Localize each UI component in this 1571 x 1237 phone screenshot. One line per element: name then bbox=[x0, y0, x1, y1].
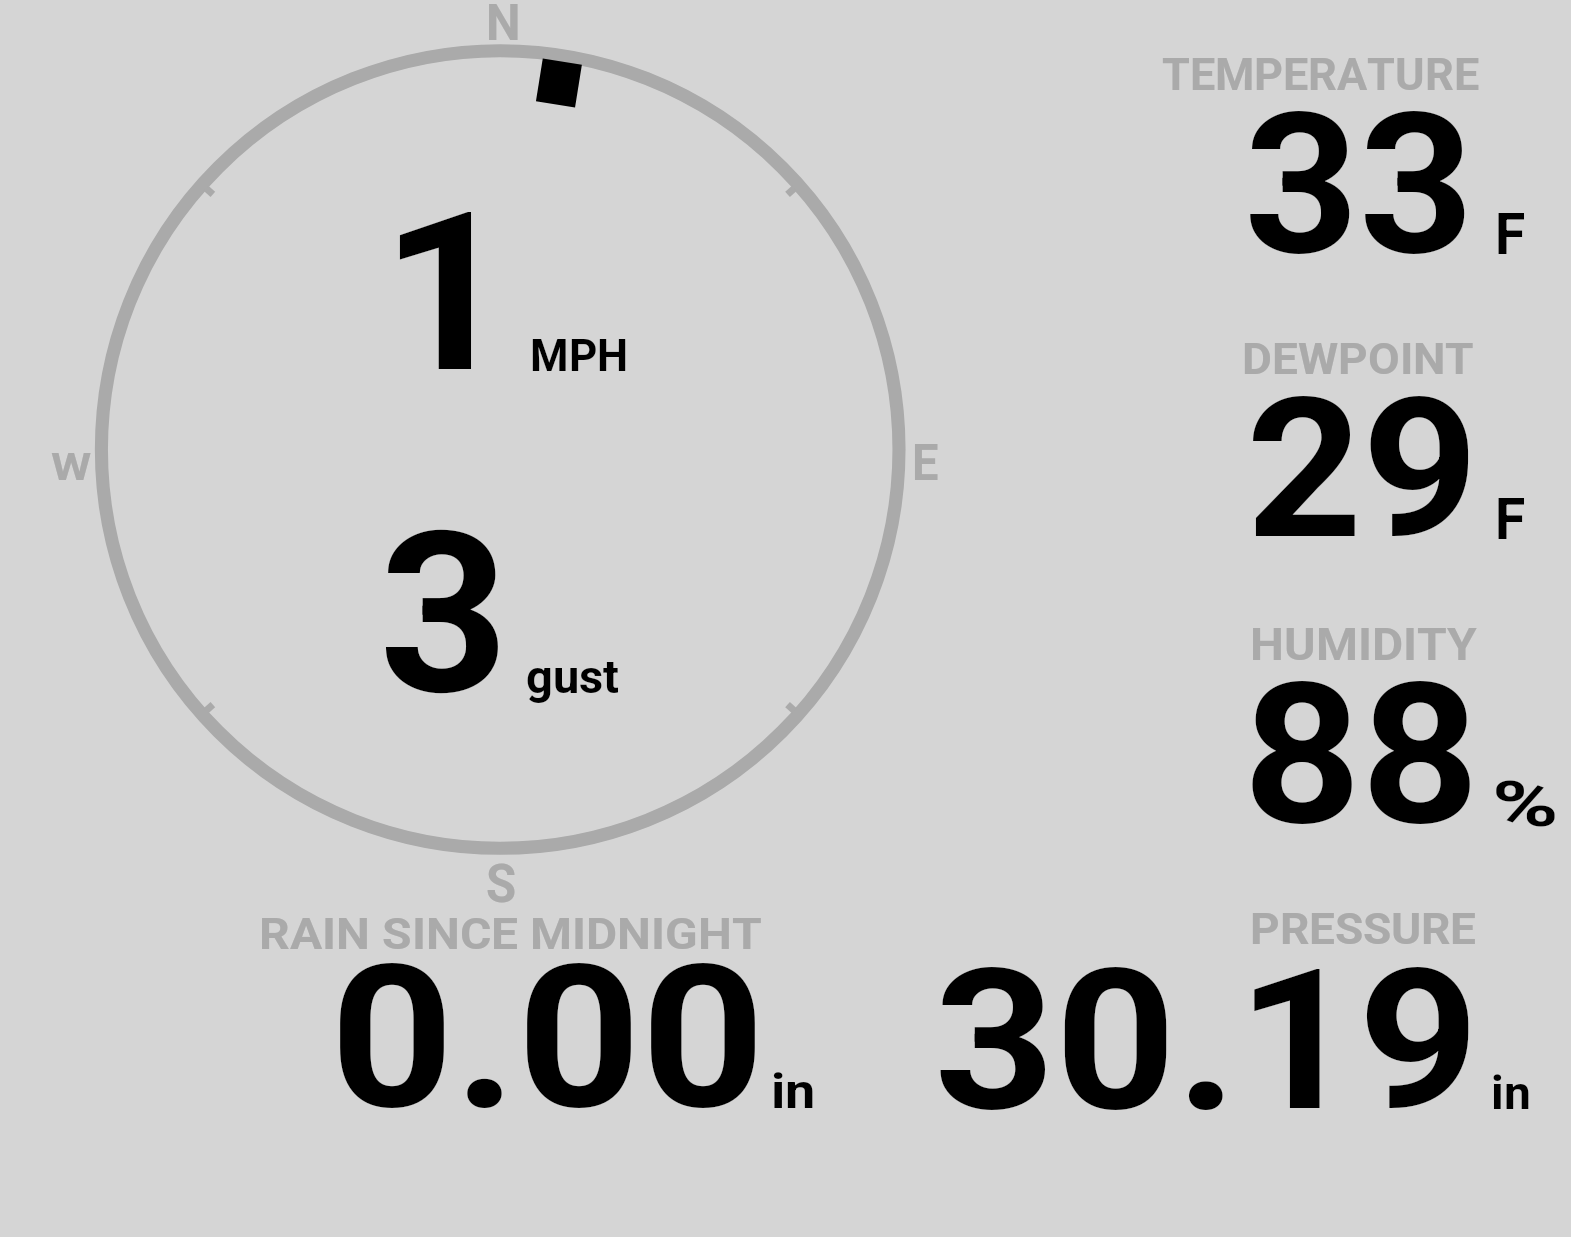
button[interactable]: Humidity 88 percent bbox=[1150, 610, 1571, 860]
button[interactable]: Pressure 30.19 inches bbox=[900, 895, 1571, 1135]
button[interactable]: Dewpoint 29 degrees F bbox=[1150, 325, 1571, 575]
button[interactable]: Rain since midnight 0.00 inches bbox=[240, 895, 840, 1135]
button[interactable]: Wind compass, 1 MPH, gusting 3 bbox=[94, 44, 906, 856]
button[interactable]: Temperature 33 degrees F bbox=[1150, 40, 1571, 290]
